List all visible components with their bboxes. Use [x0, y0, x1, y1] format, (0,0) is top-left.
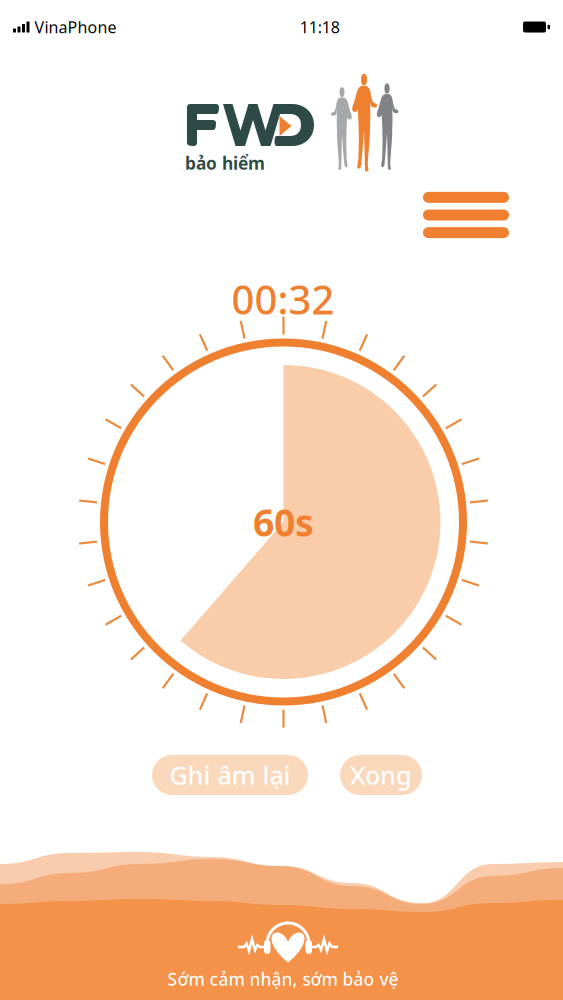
staticText: 60s [253, 497, 314, 547]
staticText: Xong [350, 758, 412, 792]
button[interactable]: Menu [414, 183, 518, 247]
staticText: Ghi âm lại [169, 758, 290, 792]
staticText: Sớm cảm nhận, sớm bảo vệ [167, 967, 398, 990]
staticText: 11:18 [300, 16, 340, 38]
staticText: 00:32 [231, 272, 334, 325]
staticText: bảo hiểm [185, 151, 265, 174]
button[interactable]: Ghi âm lại [152, 755, 308, 795]
staticText: VinaPhone [34, 16, 116, 38]
button[interactable]: Xong [340, 755, 422, 795]
